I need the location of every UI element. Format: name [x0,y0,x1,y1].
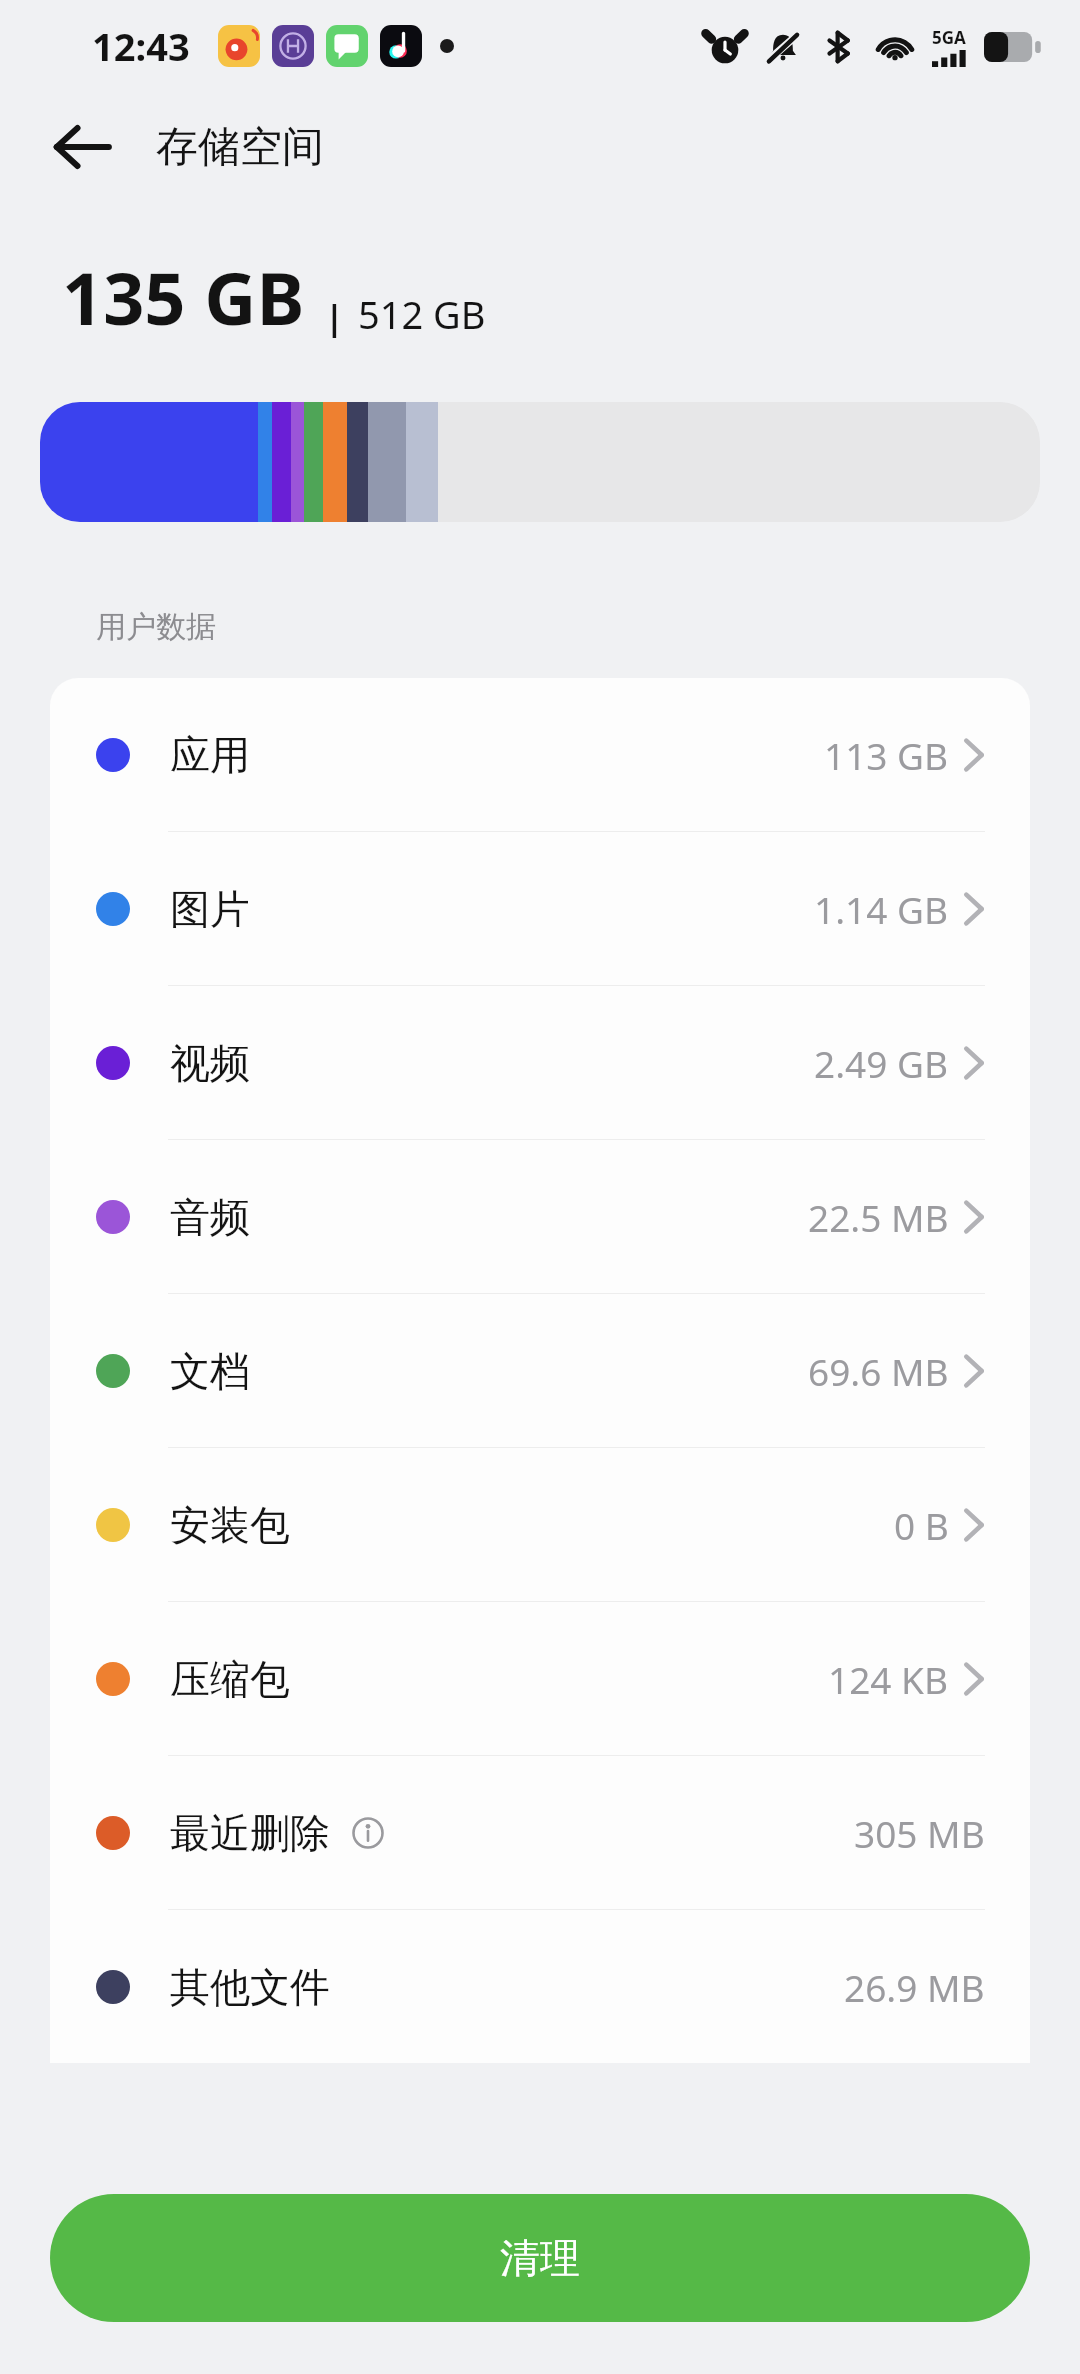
staticText: 存储空间 [156,121,324,174]
staticText: 最近删除 [170,1808,330,1858]
staticText: 其他文件 [170,1962,330,2012]
staticText: 压缩包 [170,1654,290,1704]
button[interactable]: 其他文件 [50,1910,1030,2063]
staticText: 0 B [894,1500,949,1550]
staticText: 113 GB [824,730,949,780]
staticText: 音频 [170,1192,250,1242]
staticText: | [325,294,344,340]
button[interactable]: 音频 [50,1140,1030,1293]
staticText: 124 KB [828,1654,949,1704]
staticText: 清理 [500,2233,580,2283]
button[interactable]: 视频 [50,986,1030,1139]
button[interactable]: 返回 [34,99,130,195]
staticText: 12:43 [92,20,190,72]
staticText: 26.9 MB [844,1962,985,2012]
staticText: 512 GB [358,288,486,340]
staticText: 1.14 GB [814,884,949,934]
staticText: 图片 [170,884,250,934]
staticText: 135 GB [62,248,305,346]
button[interactable]: 图片 [50,832,1030,985]
button[interactable]: 最近删除 [50,1756,1030,1909]
staticText: 22.5 MB [808,1192,949,1242]
staticText: 305 MB [854,1808,985,1858]
staticText: 文档 [170,1346,250,1396]
button[interactable]: 安装包 [50,1448,1030,1601]
staticText: 用户数据 [96,608,216,646]
staticText: 应用 [170,730,250,780]
button[interactable]: 文档 [50,1294,1030,1447]
staticText: 69.6 MB [808,1346,949,1396]
staticText: 2.49 GB [814,1038,949,1088]
button[interactable]: 压缩包 [50,1602,1030,1755]
button[interactable]: 应用 [50,678,1030,831]
button[interactable]: 清理 [50,2194,1030,2322]
staticText: 视频 [170,1038,250,1088]
staticText: 5GA [932,26,966,49]
staticText: 安装包 [170,1500,290,1550]
other: 说明 [352,1817,384,1849]
